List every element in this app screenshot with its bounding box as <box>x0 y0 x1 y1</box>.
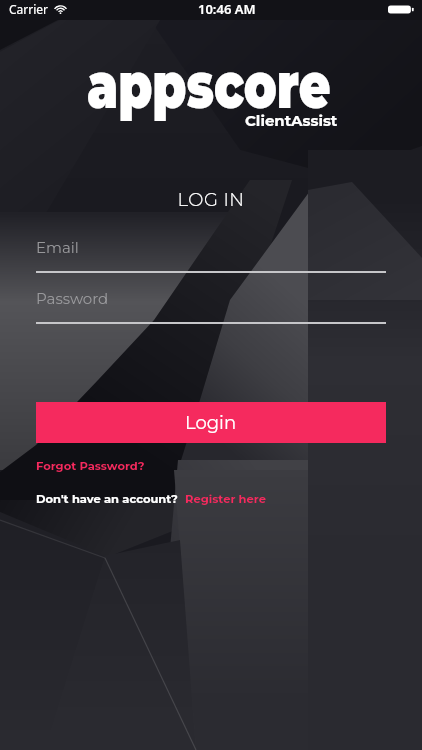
button[interactable]: Forgot Password? <box>36 459 145 473</box>
staticText: Don't have an account? <box>36 492 178 506</box>
staticText: Login <box>185 412 237 434</box>
staticText: ClientAssist <box>245 111 338 129</box>
staticText: Forgot Password? <box>36 459 145 473</box>
staticText: Register here <box>185 492 266 506</box>
staticText: Carrier <box>9 1 49 17</box>
button[interactable]: Login <box>36 402 386 443</box>
staticText: appscore <box>87 45 331 124</box>
other: Battery <box>388 3 414 16</box>
staticText: Password <box>36 289 109 307</box>
button[interactable]: Register here <box>185 492 266 506</box>
staticText: Email <box>36 238 79 256</box>
other: Wi-Fi <box>54 3 67 16</box>
staticText: LOG IN <box>0 189 422 211</box>
staticText: 10:46 AM <box>198 0 256 18</box>
